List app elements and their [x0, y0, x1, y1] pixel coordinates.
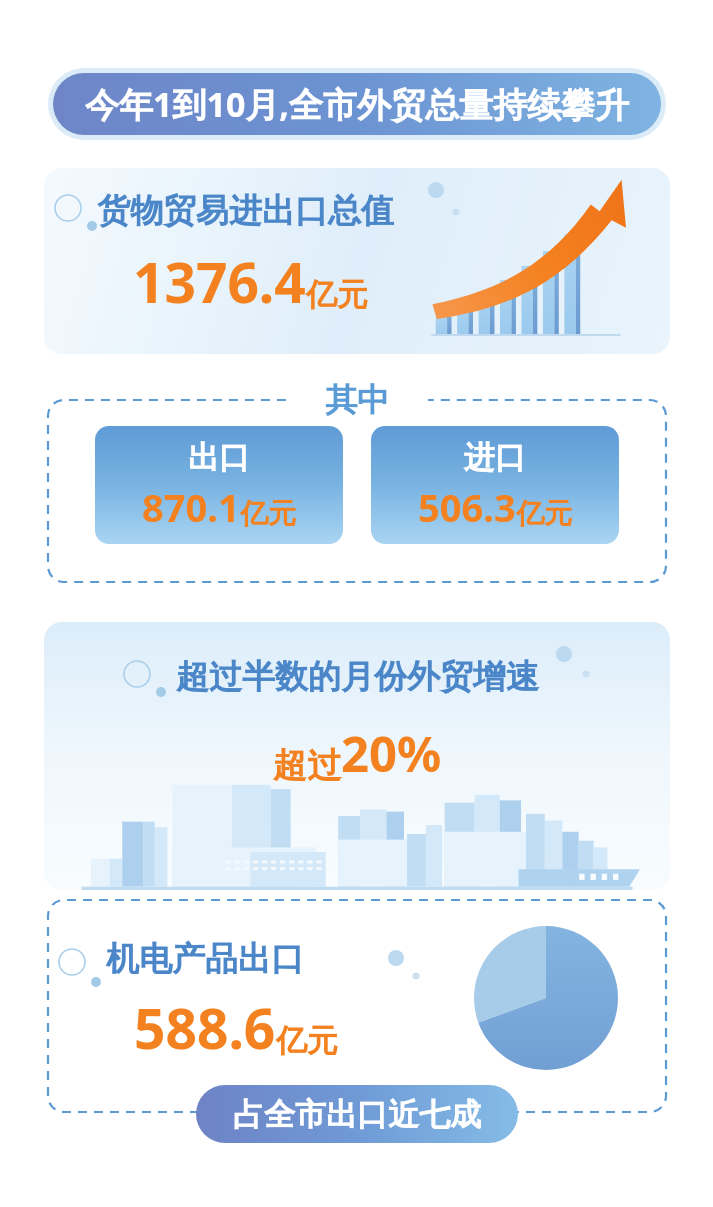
staticText: 亿元 [306, 275, 368, 314]
button[interactable]: 机电产品出口 [48, 900, 666, 1112]
button[interactable]: 今年1到10月,全市外贸总量持续攀升 [53, 73, 661, 135]
staticText: 870.1 [142, 481, 240, 533]
staticText: 506.3 [418, 481, 516, 533]
staticText: 20% [341, 720, 442, 787]
staticText: 出口 [188, 438, 250, 477]
button[interactable]: 占全市出口近七成 [196, 1085, 518, 1143]
staticText: 1376.4 [133, 244, 306, 319]
staticText: 进口 [464, 438, 526, 477]
button[interactable]: 进口 [371, 426, 619, 544]
staticText: 占全市出口近七成 [233, 1095, 481, 1134]
staticText: 亿元 [240, 496, 296, 531]
staticText: 今年1到10月,全市外贸总量持续攀升 [85, 81, 630, 127]
staticText: 机电产品出口 [106, 938, 304, 980]
staticText: 超过半数的月份外贸增速 [176, 656, 539, 698]
button[interactable]: 超过半数的月份外贸增速 [44, 622, 670, 890]
button[interactable]: 出口 [95, 426, 343, 544]
staticText: 亿元 [516, 496, 572, 531]
staticText: 货物贸易进出口总值 [97, 190, 394, 232]
staticText: 亿元 [276, 1021, 338, 1060]
staticText: 超过 [273, 744, 341, 787]
staticText: 其中 [325, 380, 389, 420]
button[interactable]: 货物贸易进出口总值 [44, 168, 670, 354]
staticText: 588.6 [134, 990, 276, 1065]
